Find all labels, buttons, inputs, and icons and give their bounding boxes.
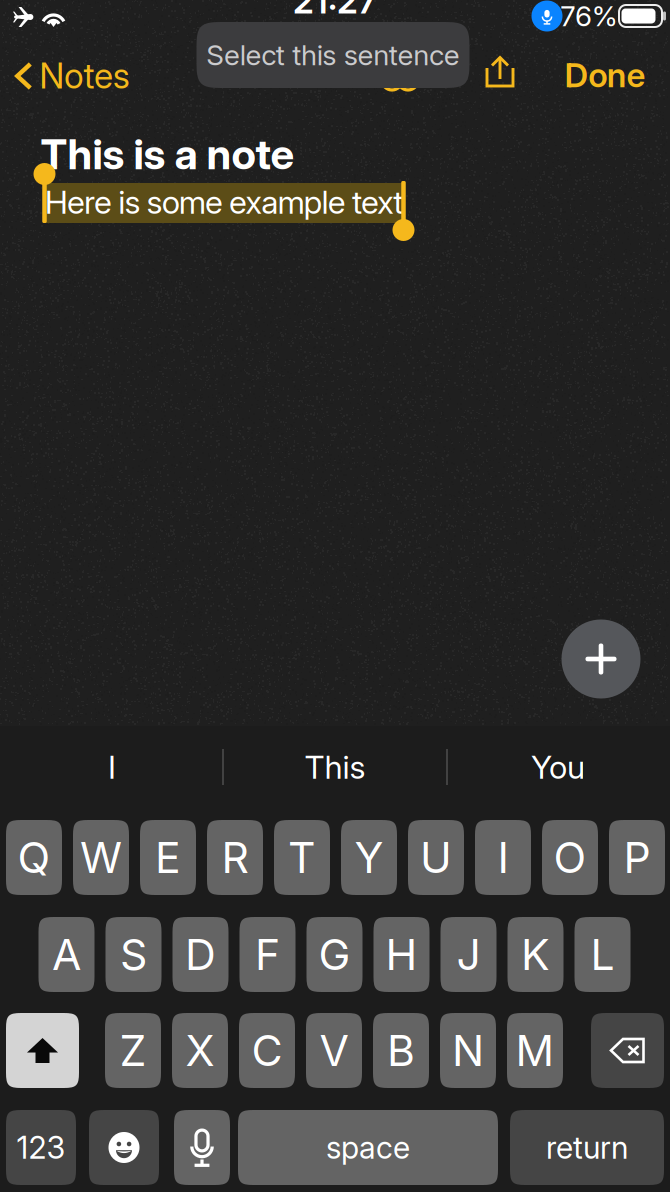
staticText: Select this sentence xyxy=(206,38,460,72)
staticText: I xyxy=(108,748,116,786)
button[interactable]: Delete xyxy=(591,1013,664,1088)
staticText: This xyxy=(304,748,365,786)
button[interactable]: V xyxy=(306,1013,362,1088)
staticText: D xyxy=(185,929,216,980)
button[interactable]: Q xyxy=(6,820,62,895)
staticText: Q xyxy=(17,832,50,883)
staticText: A xyxy=(52,929,81,980)
staticText: O xyxy=(553,832,586,883)
button[interactable]: return xyxy=(510,1110,664,1185)
staticText: Notes xyxy=(39,55,130,97)
staticText: I xyxy=(497,832,508,883)
button[interactable]: G xyxy=(306,917,362,992)
button[interactable]: A xyxy=(38,917,94,992)
button[interactable]: space xyxy=(238,1110,498,1185)
staticText: F xyxy=(255,929,280,980)
button[interactable]: W xyxy=(73,820,129,895)
staticText: T xyxy=(288,832,316,883)
button[interactable]: Shift xyxy=(6,1013,79,1088)
staticText: P xyxy=(623,832,650,883)
staticText: X xyxy=(185,1025,214,1076)
staticText: G xyxy=(318,929,350,980)
staticText: V xyxy=(319,1025,348,1076)
staticText: N xyxy=(452,1025,484,1076)
staticText: Y xyxy=(354,832,383,883)
staticText: 76% xyxy=(560,0,618,33)
button[interactable]: E xyxy=(140,820,196,895)
button[interactable]: Share xyxy=(475,46,525,98)
button[interactable]: U xyxy=(408,820,464,895)
button[interactable]: I xyxy=(475,820,531,895)
button[interactable]: Formatting xyxy=(376,54,424,106)
button[interactable]: S xyxy=(105,917,161,992)
staticText: W xyxy=(80,832,122,883)
staticText: space xyxy=(326,1129,410,1166)
button[interactable]: Z xyxy=(105,1013,161,1088)
staticText: M xyxy=(515,1025,554,1076)
button[interactable]: Add attachment xyxy=(561,619,640,698)
button[interactable]: X xyxy=(172,1013,228,1088)
staticText: S xyxy=(120,929,147,980)
staticText: R xyxy=(221,832,248,883)
button[interactable]: O xyxy=(542,820,598,895)
button[interactable]: You xyxy=(447,731,669,803)
button[interactable]: Notes xyxy=(14,50,130,102)
button[interactable]: B xyxy=(373,1013,429,1088)
button[interactable]: P xyxy=(609,820,665,895)
button[interactable]: Done xyxy=(550,49,660,101)
staticText: H xyxy=(385,929,417,980)
staticText: 123 xyxy=(16,1129,65,1166)
staticText: Done xyxy=(565,55,645,95)
staticText: J xyxy=(456,929,480,980)
button[interactable]: F xyxy=(239,917,295,992)
staticText: This is a note xyxy=(40,129,294,179)
staticText: E xyxy=(155,832,181,883)
button[interactable]: C xyxy=(239,1013,295,1088)
button[interactable]: D xyxy=(172,917,228,992)
staticText: K xyxy=(521,929,550,980)
button[interactable]: L xyxy=(574,917,630,992)
button[interactable]: H xyxy=(373,917,429,992)
staticText: L xyxy=(590,929,614,980)
button[interactable]: K xyxy=(507,917,563,992)
staticText: return xyxy=(546,1129,628,1166)
button[interactable]: I xyxy=(1,731,223,803)
button[interactable]: 123 xyxy=(6,1110,76,1185)
button[interactable]: R xyxy=(207,820,263,895)
button[interactable]: Dictate xyxy=(174,1110,230,1185)
staticText: Z xyxy=(119,1025,146,1076)
staticText: C xyxy=(251,1025,282,1076)
button[interactable]: N xyxy=(440,1013,496,1088)
staticText: U xyxy=(420,832,452,883)
button[interactable]: M xyxy=(507,1013,563,1088)
staticText: 21:27 xyxy=(293,0,377,22)
staticText: Here is some example text xyxy=(45,183,403,221)
button[interactable]: Emoji keyboard xyxy=(89,1110,159,1185)
button[interactable]: J xyxy=(440,917,496,992)
button[interactable]: This xyxy=(224,731,446,803)
button[interactable]: T xyxy=(274,820,330,895)
button[interactable]: Y xyxy=(341,820,397,895)
staticText: B xyxy=(387,1025,415,1076)
staticText: You xyxy=(531,748,585,786)
